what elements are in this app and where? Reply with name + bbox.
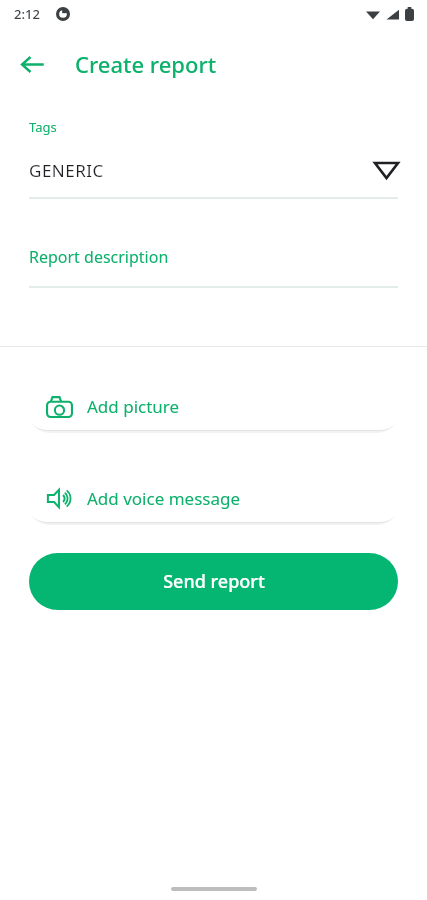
button[interactable]: GENERIC <box>29 153 398 187</box>
staticText: Send report <box>163 569 265 594</box>
button[interactable]: Add voice message <box>24 475 403 522</box>
staticText: Tags <box>29 118 57 136</box>
staticText: 2:12 <box>14 5 40 23</box>
button[interactable]: Send report <box>29 553 398 610</box>
button[interactable]: Back <box>10 42 54 86</box>
staticText: Create report <box>75 49 217 79</box>
button[interactable]: Add picture <box>24 383 403 430</box>
staticText: GENERIC <box>29 159 104 182</box>
staticText: Add voice message <box>87 487 241 510</box>
staticText: Report description <box>29 246 169 268</box>
staticText: Add picture <box>87 395 180 418</box>
